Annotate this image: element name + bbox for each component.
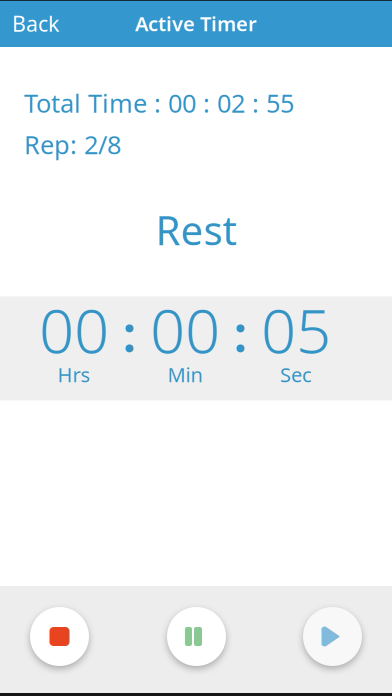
staticText: 00 xyxy=(150,289,220,370)
button[interactable]: Play xyxy=(303,607,362,666)
staticText: Hrs xyxy=(57,361,90,388)
staticText: Back xyxy=(12,9,59,38)
staticText: Sec xyxy=(280,361,312,388)
button[interactable]: Stop xyxy=(30,607,89,666)
staticText: Total Time : 00 : 02 : 55 xyxy=(24,86,294,120)
staticText: Min xyxy=(167,361,202,388)
staticText: Rest xyxy=(155,203,236,256)
staticText: Rep: 2/8 xyxy=(24,128,121,161)
staticText: Active Timer xyxy=(135,10,257,37)
staticText: 05 xyxy=(261,289,331,370)
button[interactable]: Back xyxy=(0,0,71,47)
staticText: 00 xyxy=(39,289,109,370)
button[interactable]: Pause xyxy=(167,607,226,666)
